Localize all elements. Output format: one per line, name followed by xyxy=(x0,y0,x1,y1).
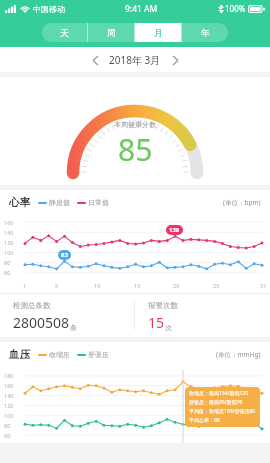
staticText: 160 xyxy=(4,219,14,226)
staticText: 2018年 3月 xyxy=(109,53,161,67)
button[interactable]: 本周健康分数 xyxy=(0,77,270,185)
staticText: 31 xyxy=(260,282,267,289)
staticText: 120 xyxy=(4,402,14,409)
staticText: 25 xyxy=(213,282,220,289)
staticText: 血压 xyxy=(9,348,30,361)
staticText: 舒张压 xyxy=(88,350,109,359)
staticText: 月 xyxy=(154,27,163,38)
staticText: 140 xyxy=(4,229,14,236)
staticText: 9:41 AM xyxy=(125,3,158,15)
button[interactable]: 年 xyxy=(182,23,228,42)
staticText: 85 xyxy=(118,129,153,170)
staticText: 收缩压 xyxy=(49,350,70,359)
button[interactable]: 周 xyxy=(88,23,134,42)
staticText: 15 xyxy=(134,282,141,289)
staticText: 80 xyxy=(4,259,11,266)
staticText: 检测总条数 xyxy=(13,301,51,310)
staticText: 2800508 xyxy=(13,313,70,332)
staticText: 180 xyxy=(4,372,14,379)
staticText: 次 xyxy=(165,323,172,332)
staticText: 10 xyxy=(94,282,101,289)
staticText: 15 xyxy=(148,313,165,332)
staticText: 日常值 xyxy=(88,198,109,207)
staticText: 舒张压：最高95/最低70 xyxy=(189,399,243,406)
button[interactable]: 天 xyxy=(42,23,87,42)
staticText: 80 xyxy=(4,422,11,429)
staticText: (单位：bpm) xyxy=(223,198,261,207)
button[interactable]: Previous month xyxy=(86,51,104,69)
staticText: 100% xyxy=(225,3,246,14)
staticText: 100 xyxy=(4,412,14,419)
staticText: 周 xyxy=(107,27,116,38)
staticText: 静息值 xyxy=(49,198,70,207)
staticText: 天 xyxy=(60,27,69,38)
staticText: 60 xyxy=(4,269,11,276)
staticText: 平均值：收缩压105/舒张压80 xyxy=(189,408,256,415)
staticText: (单位：mmHg) xyxy=(216,350,261,359)
staticText: 100 xyxy=(4,249,14,256)
staticText: 160 xyxy=(4,382,14,389)
staticText: 120 xyxy=(4,239,14,246)
button[interactable]: 月 xyxy=(135,23,181,42)
staticText: 条 xyxy=(70,323,77,332)
staticText: 报警次数 xyxy=(148,301,178,310)
button[interactable]: Next month xyxy=(166,51,184,69)
staticText: 平均心率：90 xyxy=(189,417,220,424)
staticText: 本周健康分数 xyxy=(114,120,156,129)
staticText: 收缩压：最高154/最低120 xyxy=(189,390,249,397)
staticText: 年 xyxy=(201,27,210,38)
staticText: 中国移动 xyxy=(33,4,65,14)
staticText: 20 xyxy=(173,282,180,289)
staticText: 1 xyxy=(23,282,27,289)
staticText: 5 xyxy=(55,282,59,289)
staticText: 83 xyxy=(61,251,68,259)
staticText: 140 xyxy=(4,392,14,399)
staticText: 138 xyxy=(169,226,180,234)
staticText: 心率 xyxy=(9,196,30,209)
staticText: 60 xyxy=(4,432,11,439)
